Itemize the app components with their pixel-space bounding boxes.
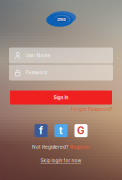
staticText: t <box>59 125 63 137</box>
button[interactable]: Forgot Password? <box>71 106 112 112</box>
staticText: Not Registered? <box>32 144 68 150</box>
staticText: G <box>77 125 85 137</box>
staticText: Skip login for now <box>40 158 81 163</box>
button[interactable]: Sign In <box>10 90 112 104</box>
button[interactable]: Skip login for now <box>40 158 81 163</box>
staticText: Register <box>70 144 90 150</box>
staticText: User Name <box>25 53 50 58</box>
staticText: cmb <box>57 17 66 22</box>
staticText: Forgot Password? <box>71 106 112 112</box>
button[interactable]: Sign in with Twitter <box>54 124 67 137</box>
staticText: f <box>39 125 43 137</box>
button[interactable]: Not Registered? <box>32 144 90 150</box>
button[interactable]: Sign in with Facebook <box>34 124 47 137</box>
staticText: Sign In <box>53 95 68 100</box>
staticText: Password <box>25 70 47 75</box>
button[interactable]: Sign in with Google <box>74 124 87 137</box>
